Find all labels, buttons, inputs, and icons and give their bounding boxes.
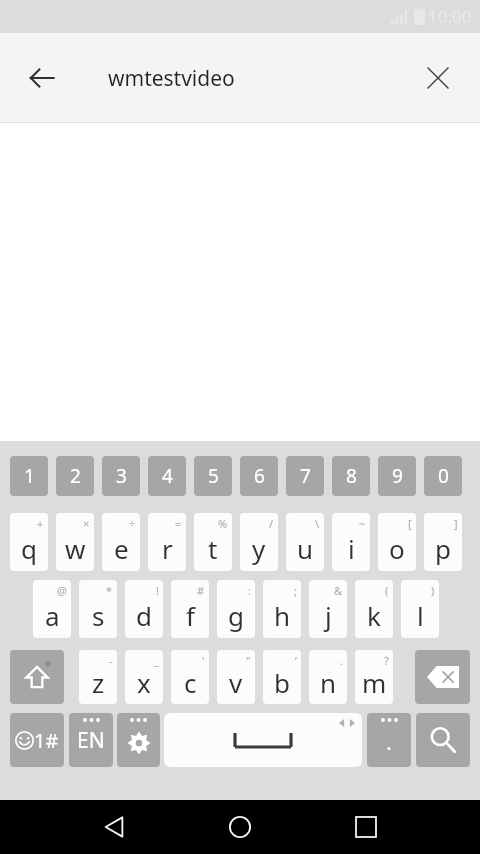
- button[interactable]: ÷: [102, 513, 140, 571]
- button[interactable]: 7: [286, 456, 324, 496]
- staticText: 5: [208, 463, 219, 489]
- staticText: !: [156, 583, 159, 598]
- button[interactable]: 9: [378, 456, 416, 496]
- button[interactable]: ): [401, 580, 439, 638]
- staticText: ': [202, 653, 205, 668]
- staticText: ;: [294, 583, 297, 598]
- button[interactable]: -: [79, 650, 117, 704]
- staticText: u: [297, 531, 314, 566]
- button[interactable]: \: [286, 513, 324, 571]
- button[interactable]: 0: [424, 456, 462, 496]
- button[interactable]: Clear: [412, 52, 464, 104]
- button[interactable]: 2: [56, 456, 94, 496]
- button[interactable]: Space: [164, 713, 362, 767]
- staticText: w: [65, 531, 86, 566]
- button[interactable]: 5: [194, 456, 232, 496]
- staticText: [: [408, 516, 412, 531]
- button[interactable]: &: [309, 580, 347, 638]
- button[interactable]: (: [355, 580, 393, 638]
- button[interactable]: @: [33, 580, 71, 638]
- staticText: ~: [359, 516, 366, 531]
- staticText: 7: [300, 463, 311, 489]
- button[interactable]: =: [148, 513, 186, 571]
- button[interactable]: 8: [332, 456, 370, 496]
- staticText: x: [137, 665, 151, 700]
- staticText: *: [106, 583, 113, 598]
- button[interactable]: ': [171, 650, 209, 704]
- button[interactable]: ": [217, 650, 255, 704]
- button[interactable]: #: [171, 580, 209, 638]
- button[interactable]: +: [10, 513, 48, 571]
- button[interactable]: ;: [263, 580, 301, 638]
- staticText: _: [154, 653, 159, 668]
- staticText: z: [92, 665, 105, 700]
- staticText: +: [37, 516, 44, 531]
- button[interactable]: ?: [355, 650, 393, 704]
- button[interactable]: !: [125, 580, 163, 638]
- staticText: wmtestvideo: [108, 64, 235, 93]
- staticText: ): [431, 583, 435, 598]
- staticText: 6: [254, 463, 265, 489]
- staticText: EN: [77, 726, 105, 755]
- staticText: y: [252, 531, 266, 566]
- staticText: n: [320, 665, 337, 700]
- button[interactable]: Settings: [117, 713, 160, 767]
- button[interactable]: *: [79, 580, 117, 638]
- staticText: (: [385, 583, 389, 598]
- button[interactable]: 4: [148, 456, 186, 496]
- button[interactable]: Back: [14, 50, 70, 106]
- button[interactable]: ]: [424, 513, 462, 571]
- button[interactable]: Back: [88, 801, 140, 853]
- staticText: #: [197, 583, 205, 598]
- button[interactable]: ×: [56, 513, 94, 571]
- button[interactable]: Emoji and symbols: [10, 713, 64, 767]
- button[interactable]: /: [240, 513, 278, 571]
- button[interactable]: :: [217, 580, 255, 638]
- staticText: b: [274, 665, 290, 700]
- staticText: 1: [24, 463, 35, 489]
- button[interactable]: 1: [10, 456, 48, 496]
- button[interactable]: Shift: [10, 650, 64, 704]
- staticText: c: [184, 665, 197, 700]
- staticText: ÷: [129, 516, 136, 531]
- button[interactable]: ~: [332, 513, 370, 571]
- button[interactable]: 6: [240, 456, 278, 496]
- staticText: q: [21, 531, 37, 566]
- button[interactable]: Home: [214, 801, 266, 853]
- staticText: ": [246, 653, 251, 668]
- button[interactable]: Recent apps: [340, 801, 392, 853]
- staticText: a: [45, 598, 60, 633]
- staticText: r: [162, 531, 173, 566]
- button[interactable]: Search: [416, 713, 470, 767]
- button[interactable]: EN: [69, 713, 113, 767]
- staticText: i: [348, 531, 355, 566]
- button[interactable]: _: [125, 650, 163, 704]
- staticText: ×: [83, 516, 90, 531]
- staticText: /: [269, 516, 274, 531]
- staticText: 10:00: [428, 5, 472, 28]
- button[interactable]: [: [378, 513, 416, 571]
- staticText: .: [340, 653, 343, 668]
- staticText: \: [315, 516, 320, 531]
- staticText: p: [435, 531, 451, 566]
- button[interactable]: .: [309, 650, 347, 704]
- staticText: ]: [454, 516, 458, 531]
- staticText: v: [229, 665, 243, 700]
- staticText: 3: [116, 463, 127, 489]
- staticText: d: [136, 598, 152, 633]
- staticText: t: [208, 531, 218, 566]
- staticText: ’: [295, 653, 297, 668]
- button[interactable]: ’: [263, 650, 301, 704]
- staticText: -: [109, 653, 113, 668]
- staticText: s: [92, 598, 105, 633]
- button[interactable]: Backspace: [415, 650, 470, 704]
- staticText: 4: [162, 463, 173, 489]
- button[interactable]: .: [367, 713, 411, 767]
- staticText: k: [367, 598, 381, 633]
- staticText: j: [325, 598, 332, 633]
- staticText: %: [218, 516, 228, 531]
- button[interactable]: %: [194, 513, 232, 571]
- staticText: :: [248, 583, 251, 598]
- button[interactable]: 3: [102, 456, 140, 496]
- staticText: 8: [346, 463, 357, 489]
